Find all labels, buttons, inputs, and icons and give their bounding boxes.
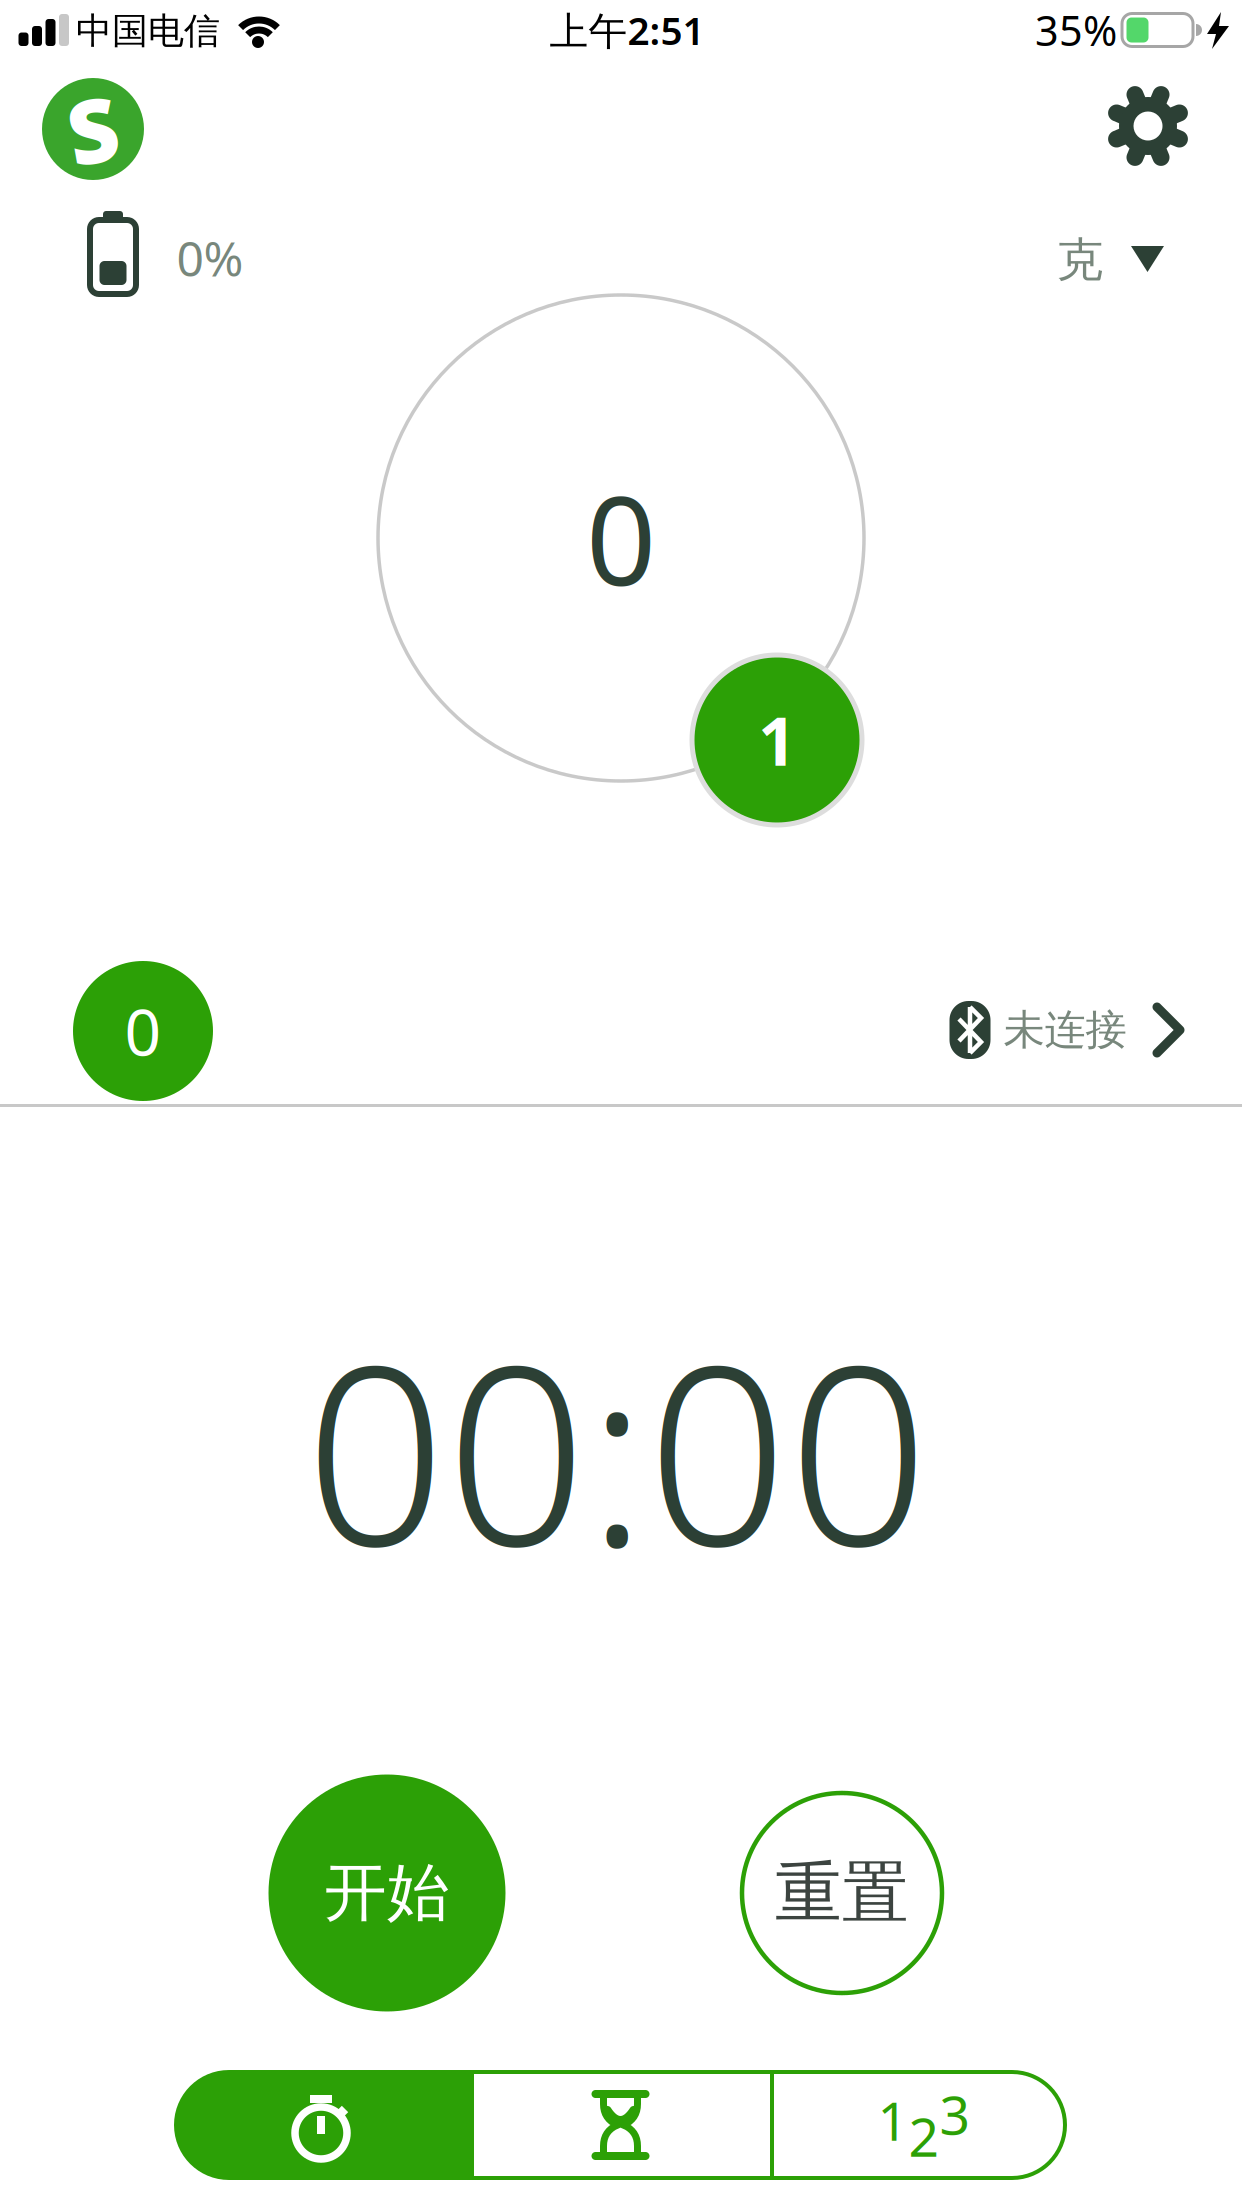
- staticText: 克: [1056, 231, 1103, 289]
- staticText: 开始: [324, 1854, 450, 1931]
- staticText: 1: [758, 696, 796, 784]
- button[interactable]: App logo: [42, 78, 144, 180]
- staticText: 1: [877, 2085, 908, 2155]
- staticText: 2: [908, 2101, 939, 2171]
- button[interactable]: Unit: grams: [1050, 230, 1170, 290]
- staticText: 0: [124, 988, 161, 1073]
- staticText: 重置: [775, 1852, 909, 1934]
- staticText: S: [67, 71, 118, 187]
- staticText: 上午2:51: [549, 4, 704, 56]
- staticText: 0: [586, 457, 656, 619]
- staticText: 0%: [176, 226, 243, 290]
- button[interactable]: 重置: [742, 1793, 942, 1993]
- button[interactable]: Stopwatch: [281, 2086, 361, 2166]
- button[interactable]: Settings: [1109, 87, 1187, 165]
- staticText: 3: [939, 2079, 970, 2149]
- staticText: 35%: [1035, 3, 1117, 57]
- staticText: 未连接: [1003, 1005, 1126, 1055]
- button[interactable]: Counter: [844, 2080, 1004, 2170]
- button[interactable]: Timer: [580, 2085, 660, 2165]
- button[interactable]: Bluetooth not connected: [943, 999, 1183, 1061]
- button[interactable]: 开始: [268, 1774, 505, 2011]
- staticText: 00:00: [305, 1286, 929, 1614]
- staticText: 中国电信: [76, 9, 220, 53]
